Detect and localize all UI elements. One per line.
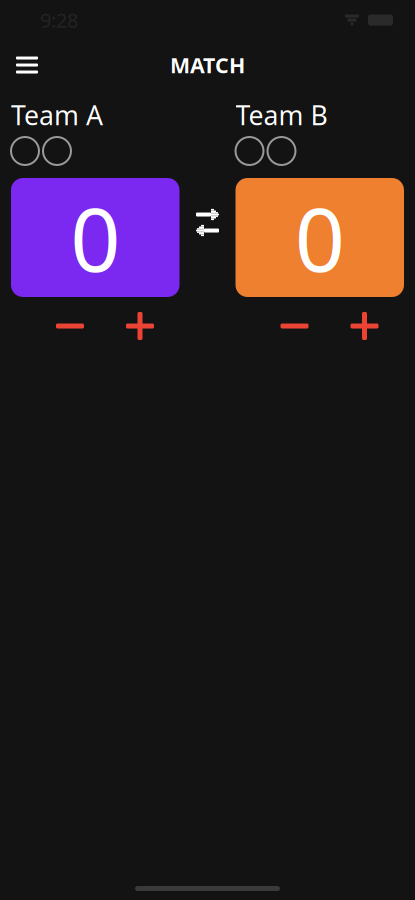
button[interactable]: 0 [11,178,179,297]
staticText: MATCH [170,51,245,79]
staticText: 9:28 [40,7,78,33]
button[interactable]: Menu [5,43,49,87]
staticText: 0 [70,179,120,296]
button[interactable]: Increase Team B score [329,304,399,348]
staticText: Team A [11,97,103,133]
button[interactable]: Increase Team A score [105,304,175,348]
staticText: Team B [235,97,327,133]
button[interactable]: Decrease Team B score [259,304,329,348]
button[interactable]: Swap sides [179,163,235,282]
button[interactable]: Decrease Team A score [35,304,105,348]
staticText: 0 [295,179,345,296]
button[interactable]: 0 [235,178,404,297]
